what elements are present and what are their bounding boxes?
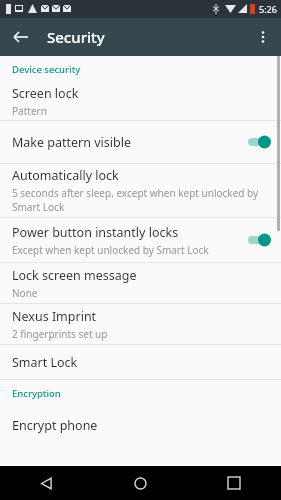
- staticText: Make pattern visible: [12, 134, 131, 151]
- staticText: Device security: [12, 63, 81, 76]
- staticText: Nexus Imprint: [12, 308, 97, 325]
- staticText: 5 seconds after sleep, except when kept …: [12, 186, 271, 214]
- button[interactable]: Nexus Imprint: [0, 304, 281, 344]
- button[interactable]: Make pattern visible: [0, 121, 281, 163]
- staticText: Pattern: [12, 104, 47, 118]
- staticText: Except when kept unlocked by Smart Lock: [12, 243, 209, 257]
- button[interactable]: Lock screen message: [0, 263, 281, 303]
- button[interactable]: Recent apps: [187, 466, 281, 500]
- staticText: None: [12, 286, 38, 300]
- staticText: 2 fingerprints set up: [12, 327, 108, 341]
- staticText: Automatically lock: [12, 167, 119, 184]
- button[interactable]: More options: [250, 24, 276, 50]
- button[interactable]: Home: [93, 466, 187, 500]
- staticText: Lock screen message: [12, 267, 137, 284]
- button[interactable]: Back: [8, 24, 34, 50]
- button[interactable]: Screen lock: [0, 82, 281, 120]
- button[interactable]: Smart Lock: [0, 345, 281, 379]
- button[interactable]: Automatically lock: [0, 164, 281, 217]
- button[interactable]: Power button instantly locks: [0, 218, 281, 262]
- staticText: Encryption: [12, 387, 61, 400]
- staticText: Screen lock: [12, 85, 79, 102]
- staticText: Encrypt phone: [12, 417, 98, 434]
- button[interactable]: Encrypt phone: [0, 406, 281, 444]
- staticText: 5:26: [259, 3, 277, 15]
- staticText: Security: [47, 27, 105, 47]
- staticText: Power button instantly locks: [12, 224, 179, 241]
- button[interactable]: Back: [0, 466, 93, 500]
- staticText: Smart Lock: [12, 354, 78, 371]
